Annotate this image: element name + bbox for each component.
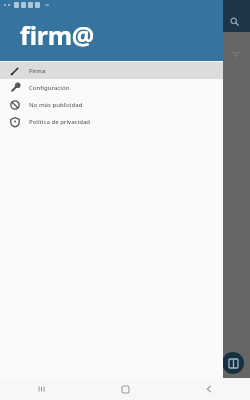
staticText: firm@ bbox=[20, 18, 94, 52]
button[interactable]: Buscar bbox=[226, 13, 242, 29]
staticText: Configuración bbox=[29, 84, 70, 92]
button[interactable]: Recientes bbox=[0, 378, 84, 400]
button[interactable]: No más publicidad bbox=[0, 96, 223, 113]
button[interactable]: Inicio bbox=[84, 378, 167, 400]
staticText: No más publicidad bbox=[29, 101, 83, 109]
button[interactable]: Política de privacidad bbox=[0, 113, 223, 130]
staticText: Política de privacidad bbox=[29, 118, 91, 126]
button[interactable]: Atrás bbox=[167, 378, 250, 400]
button[interactable]: Firma bbox=[0, 62, 223, 79]
button[interactable]: Añadir bbox=[222, 352, 244, 374]
staticText: Firma bbox=[29, 67, 46, 75]
button[interactable]: Configuración bbox=[0, 79, 223, 96]
